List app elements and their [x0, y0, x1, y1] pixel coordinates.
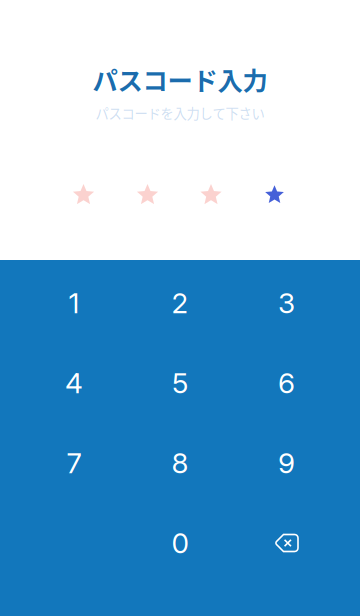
button[interactable]: 7: [21, 423, 127, 503]
button[interactable]: 0: [127, 503, 233, 583]
staticText: 1: [68, 286, 79, 320]
staticText: 6: [278, 366, 295, 400]
staticText: 2: [171, 286, 188, 320]
staticText: 0: [171, 526, 188, 560]
button[interactable]: 3: [233, 263, 339, 343]
staticText: パスコード入力: [92, 61, 267, 98]
button[interactable]: 6: [233, 343, 339, 423]
staticText: 7: [66, 446, 81, 480]
button[interactable]: 2: [127, 263, 233, 343]
staticText: 3: [278, 286, 295, 320]
button[interactable]: 8: [127, 423, 233, 503]
staticText: パスコードを入力して下さい: [95, 103, 264, 123]
staticText: 5: [172, 366, 188, 400]
button[interactable]: Delete: [233, 503, 339, 583]
button[interactable]: 1: [21, 263, 127, 343]
staticText: 9: [278, 446, 295, 480]
staticText: 4: [65, 366, 83, 400]
button[interactable]: 4: [21, 343, 127, 423]
button[interactable]: 9: [233, 423, 339, 503]
staticText: 8: [171, 446, 188, 480]
button[interactable]: 5: [127, 343, 233, 423]
